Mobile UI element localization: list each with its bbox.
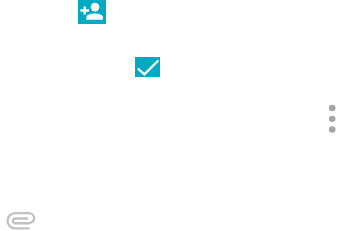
button[interactable]: Done <box>135 57 160 77</box>
button[interactable]: Add person <box>78 0 106 24</box>
button[interactable]: Attach <box>5 210 37 231</box>
button[interactable]: More options <box>323 101 337 137</box>
